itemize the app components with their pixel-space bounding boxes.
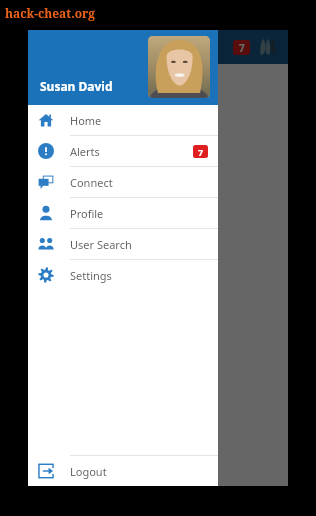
staticText: Settings (70, 268, 112, 283)
button[interactable]: Settings (28, 260, 218, 290)
button[interactable]: Connect (28, 167, 218, 197)
staticText: Profile (70, 206, 104, 221)
staticText: Connect (70, 175, 113, 190)
button[interactable]: Alerts (28, 136, 218, 166)
staticText: …int by swiping …t. You can use …use you… (38, 166, 111, 218)
staticText: Logout (70, 464, 107, 479)
staticText: …le app. (38, 72, 97, 92)
button[interactable]: Susan David (28, 30, 218, 105)
button[interactable]: Logout (28, 456, 218, 486)
staticText: Home (70, 113, 102, 128)
button[interactable]: User Search (28, 229, 218, 259)
staticText: hack-cheat.org (5, 5, 96, 21)
staticText: 7 (239, 41, 245, 55)
staticText: Susan David (40, 78, 113, 94)
button[interactable]: Profile (28, 198, 218, 228)
staticText: User Search (70, 237, 132, 252)
button[interactable]: Notifications (233, 40, 250, 55)
button[interactable]: Home (28, 105, 218, 135)
button[interactable]: App logo (256, 35, 280, 59)
staticText: Alerts (70, 144, 100, 159)
staticText: 7 (198, 146, 204, 158)
other: Profile photo (148, 36, 210, 98)
staticText: …munication …tion. The app …r tablet. Yo… (38, 100, 108, 152)
